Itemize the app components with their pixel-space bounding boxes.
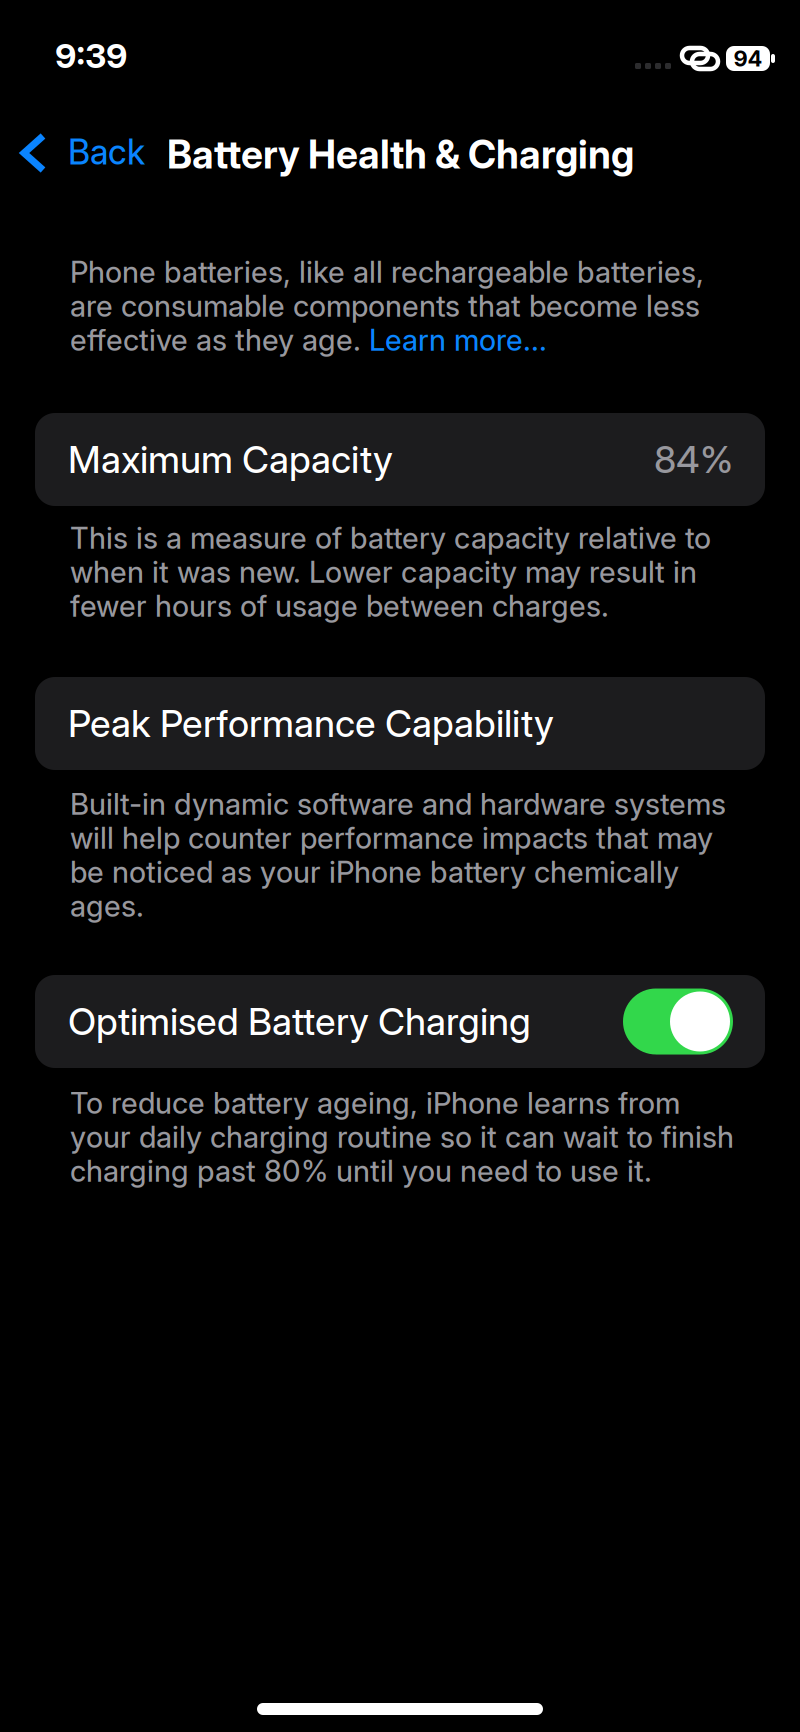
staticText: Peak Performance Capability (68, 701, 554, 746)
staticText: effective as they age. (70, 322, 369, 358)
staticText: be noticed as your iPhone battery chemic… (70, 854, 679, 890)
button[interactable]: Optimised Battery Charging (0, 975, 800, 1068)
staticText: Back (68, 131, 145, 173)
staticText: Optimised Battery Charging (68, 999, 531, 1044)
staticText: will help counter performance impacts th… (70, 820, 713, 856)
staticText: This is a measure of battery capacity re… (70, 520, 711, 556)
staticText: Built-in dynamic software and hardware s… (70, 786, 726, 822)
staticText: Battery Health & Charging (167, 131, 634, 178)
staticText: charging past 80% until you need to use … (70, 1153, 652, 1189)
staticText: To reduce battery ageing, iPhone learns … (70, 1085, 680, 1121)
staticText: 9:39 (55, 35, 127, 76)
staticText: fewer hours of usage between charges. (70, 588, 609, 624)
staticText: ages. (70, 888, 144, 924)
staticText: Learn more... (369, 322, 547, 358)
staticText: Maximum Capacity (68, 437, 393, 482)
staticText: are consumable components that become le… (70, 288, 700, 324)
button[interactable]: Learn more... (369, 322, 547, 358)
staticText: 94 (733, 45, 762, 72)
staticText: when it was new. Lower capacity may resu… (70, 554, 697, 590)
button[interactable]: Peak Performance Capability (0, 677, 800, 770)
button[interactable]: Maximum Capacity (0, 413, 800, 506)
staticText: your daily charging routine so it can wa… (70, 1119, 734, 1155)
staticText: 84% (654, 437, 733, 482)
staticText: Phone batteries, like all rechargeable b… (70, 254, 704, 290)
button[interactable]: Back (0, 122, 159, 182)
